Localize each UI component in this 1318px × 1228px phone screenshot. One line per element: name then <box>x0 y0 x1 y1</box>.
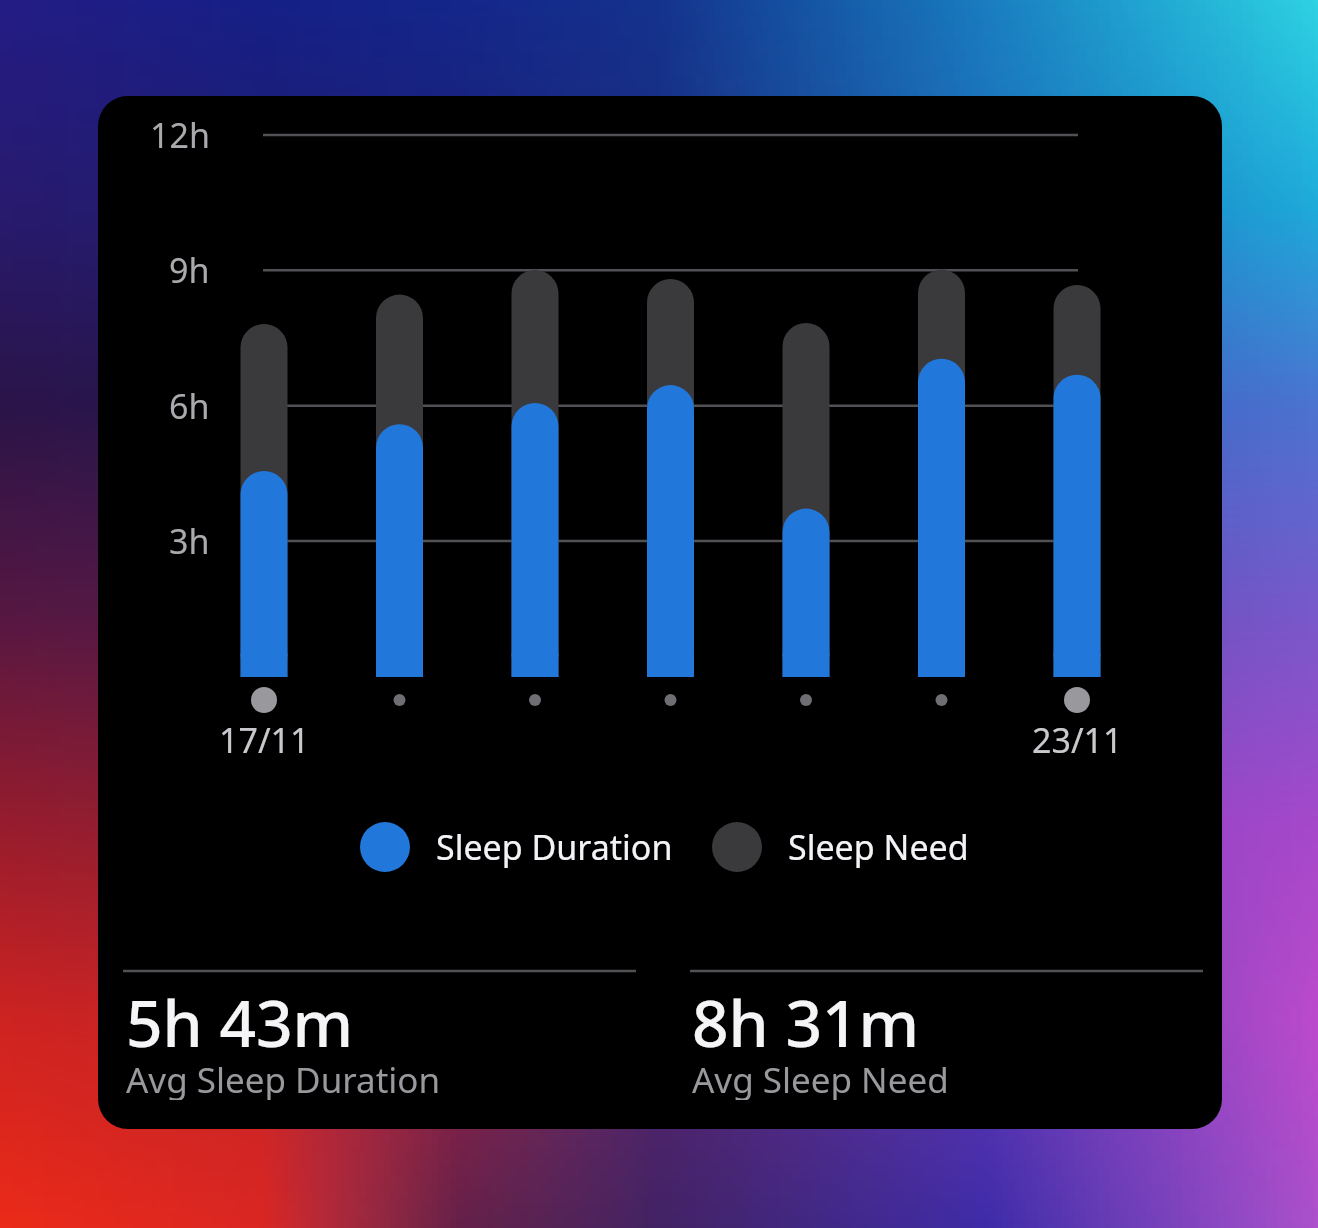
staticText: 8h 31m <box>692 979 920 1055</box>
staticText: 17/11 <box>219 717 310 763</box>
staticText: 23/11 <box>1032 717 1123 763</box>
staticText: 3h <box>169 518 210 564</box>
button[interactable]: 12h <box>98 96 1222 1129</box>
staticText: Sleep Need <box>788 824 969 870</box>
staticText: Sleep Duration <box>436 824 673 870</box>
staticText: 9h <box>169 247 210 293</box>
staticText: Avg Sleep Need <box>692 1056 949 1100</box>
staticText: 12h <box>150 112 210 158</box>
staticText: Avg Sleep Duration <box>126 1056 441 1100</box>
staticText: 6h <box>169 383 210 429</box>
staticText: 5h 43m <box>126 979 354 1055</box>
